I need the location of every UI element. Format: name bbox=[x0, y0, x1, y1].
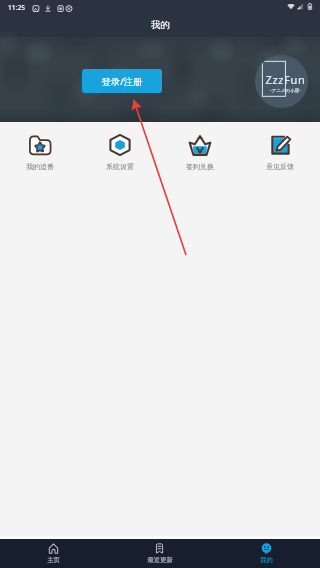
button[interactable]: 我的追番 bbox=[0, 122, 80, 175]
button[interactable]: 我的 bbox=[213, 539, 320, 568]
staticText: 登录/注册 bbox=[101, 75, 143, 88]
staticText: -アニメの小屋- bbox=[270, 87, 301, 93]
button[interactable]: 最近更新 bbox=[106, 539, 213, 568]
staticText: 我的 bbox=[260, 556, 273, 564]
button[interactable]: 登录/注册 bbox=[82, 69, 162, 93]
staticText: ZzzFun bbox=[265, 72, 306, 87]
staticText: 最近更新 bbox=[147, 556, 173, 564]
staticText: 主页 bbox=[47, 556, 60, 564]
staticText: 我的追番 bbox=[26, 162, 54, 171]
button[interactable]: 用户头像 bbox=[255, 55, 308, 108]
staticText: 11:25 bbox=[8, 3, 25, 12]
staticText: 系统设置 bbox=[106, 162, 134, 171]
button[interactable]: 签到兑换 bbox=[160, 122, 240, 175]
staticText: 我的 bbox=[151, 19, 170, 31]
button[interactable]: 意见反馈 bbox=[240, 122, 320, 175]
staticText: 签到兑换 bbox=[186, 162, 214, 171]
button[interactable]: 系统设置 bbox=[80, 122, 160, 175]
staticText: 意见反馈 bbox=[266, 162, 294, 171]
button[interactable]: 主页 bbox=[0, 539, 106, 568]
